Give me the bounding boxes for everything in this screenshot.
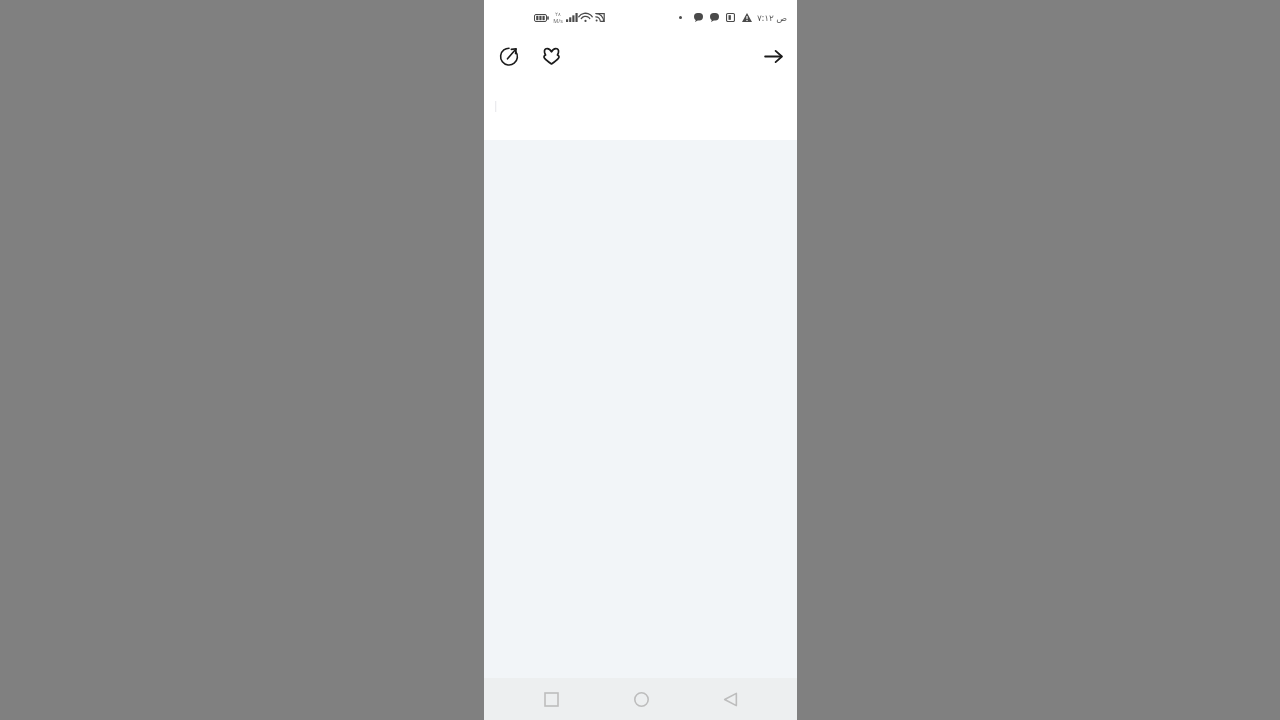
button[interactable]: Home	[618, 678, 664, 720]
button[interactable]: Recents	[528, 678, 574, 720]
staticText: ٢٨	[555, 11, 561, 17]
staticText: ص ٧:١٢	[757, 11, 788, 23]
button[interactable]: Back	[755, 38, 791, 74]
button[interactable]: Share	[491, 38, 527, 74]
staticText: M/s	[553, 17, 563, 24]
button[interactable]: Back	[707, 678, 753, 720]
button[interactable]: Favorite	[533, 38, 569, 74]
